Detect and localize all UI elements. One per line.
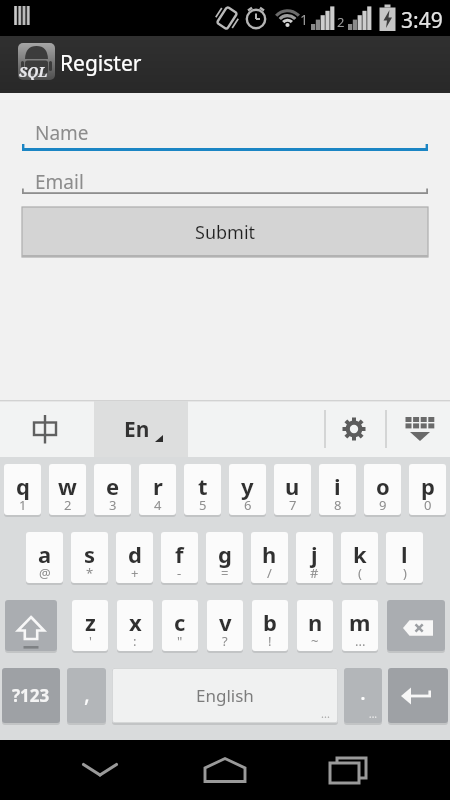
staticText: ) (403, 564, 407, 582)
staticText: b (263, 607, 277, 637)
button[interactable]: v (207, 600, 243, 651)
staticText: 7 (289, 496, 297, 514)
staticText: h (262, 539, 277, 569)
staticText: ... (321, 706, 330, 721)
staticText: 3:49 (401, 6, 443, 35)
button[interactable]: g (206, 532, 243, 583)
button[interactable] (388, 668, 448, 723)
staticText: , (84, 678, 90, 708)
staticText: a (38, 539, 52, 569)
staticText: ... (355, 632, 366, 650)
staticText: @ (39, 564, 51, 582)
staticText: ( (358, 564, 362, 582)
button[interactable] (387, 600, 445, 651)
staticText: ! (268, 632, 272, 650)
button[interactable]: n (297, 600, 333, 651)
staticText: f (175, 539, 184, 569)
button[interactable]: k (341, 532, 378, 583)
staticText: s (84, 539, 96, 569)
button[interactable]: j (296, 532, 333, 583)
button[interactable]: u (274, 464, 311, 515)
button[interactable]: Email (22, 159, 428, 199)
staticText: 6 (244, 496, 252, 514)
staticText: ... (369, 707, 378, 721)
button[interactable]: , (67, 668, 106, 723)
button[interactable]: s (71, 532, 108, 583)
staticText: k (353, 539, 367, 569)
button[interactable]: h (251, 532, 288, 583)
button[interactable]: x (117, 600, 153, 651)
button[interactable]: t (184, 464, 221, 515)
button[interactable]: ?123 (2, 668, 60, 723)
staticText: c (174, 607, 186, 637)
button[interactable]: En (94, 401, 188, 457)
staticText: SQL (19, 62, 48, 80)
staticText: 4 (154, 496, 162, 514)
staticText: 5 (199, 496, 207, 514)
button[interactable]: m (342, 600, 378, 651)
button[interactable]: i (319, 464, 356, 515)
button[interactable]: a (26, 532, 63, 583)
staticText: # (310, 564, 319, 582)
staticText: p (421, 471, 435, 501)
button[interactable]: q (4, 464, 41, 515)
button[interactable] (195, 740, 255, 800)
staticText: + (131, 564, 139, 582)
button[interactable]: SQL (0, 36, 450, 93)
staticText: l (401, 539, 408, 569)
staticText: 0 (424, 496, 432, 514)
staticText: . (360, 676, 366, 706)
staticText: 1 (19, 496, 27, 514)
button[interactable]: r (139, 464, 176, 515)
button[interactable] (20, 400, 70, 457)
button[interactable]: y (229, 464, 266, 515)
button[interactable] (394, 405, 446, 453)
staticText: j (311, 539, 318, 569)
button[interactable]: Submit (22, 207, 428, 257)
staticText: 2 (337, 13, 345, 31)
staticText: t (198, 471, 208, 501)
staticText: Submit (195, 220, 256, 245)
button[interactable]: o (364, 464, 401, 515)
button[interactable]: e (94, 464, 131, 515)
button[interactable]: . (344, 668, 382, 723)
button[interactable]: w (49, 464, 86, 515)
staticText: = (221, 564, 229, 582)
staticText: English (196, 684, 254, 707)
button[interactable] (330, 405, 378, 453)
staticText: En (124, 415, 150, 444)
staticText: Email (35, 169, 84, 195)
staticText: z (85, 607, 96, 637)
staticText: n (308, 607, 323, 637)
button[interactable]: z (72, 600, 108, 651)
staticText: i (334, 471, 341, 501)
button[interactable]: Name (22, 110, 428, 152)
button[interactable]: c (162, 600, 198, 651)
staticText: 1 (300, 10, 309, 29)
staticText: 2 (64, 496, 72, 514)
staticText: 9 (379, 496, 387, 514)
button[interactable]: b (252, 600, 288, 651)
button[interactable]: English (112, 668, 338, 723)
button[interactable]: l (386, 532, 423, 583)
staticText: x (129, 607, 142, 637)
staticText: ' (89, 632, 92, 650)
staticText: ?123 (12, 684, 50, 707)
button[interactable] (70, 740, 130, 800)
staticText: w (58, 471, 77, 501)
button[interactable]: d (116, 532, 153, 583)
staticText: : (133, 632, 137, 650)
staticText: q (16, 471, 30, 501)
staticText: e (106, 471, 120, 501)
staticText: ? (222, 632, 228, 650)
staticText: * (86, 564, 94, 582)
button[interactable] (318, 740, 378, 800)
staticText: y (241, 471, 254, 501)
button[interactable] (5, 600, 57, 651)
button[interactable]: p (409, 464, 446, 515)
staticText: v (219, 607, 232, 637)
button[interactable]: f (161, 532, 198, 583)
staticText: m (349, 607, 371, 637)
staticText: Name (35, 120, 89, 146)
staticText: 3 (109, 496, 117, 514)
